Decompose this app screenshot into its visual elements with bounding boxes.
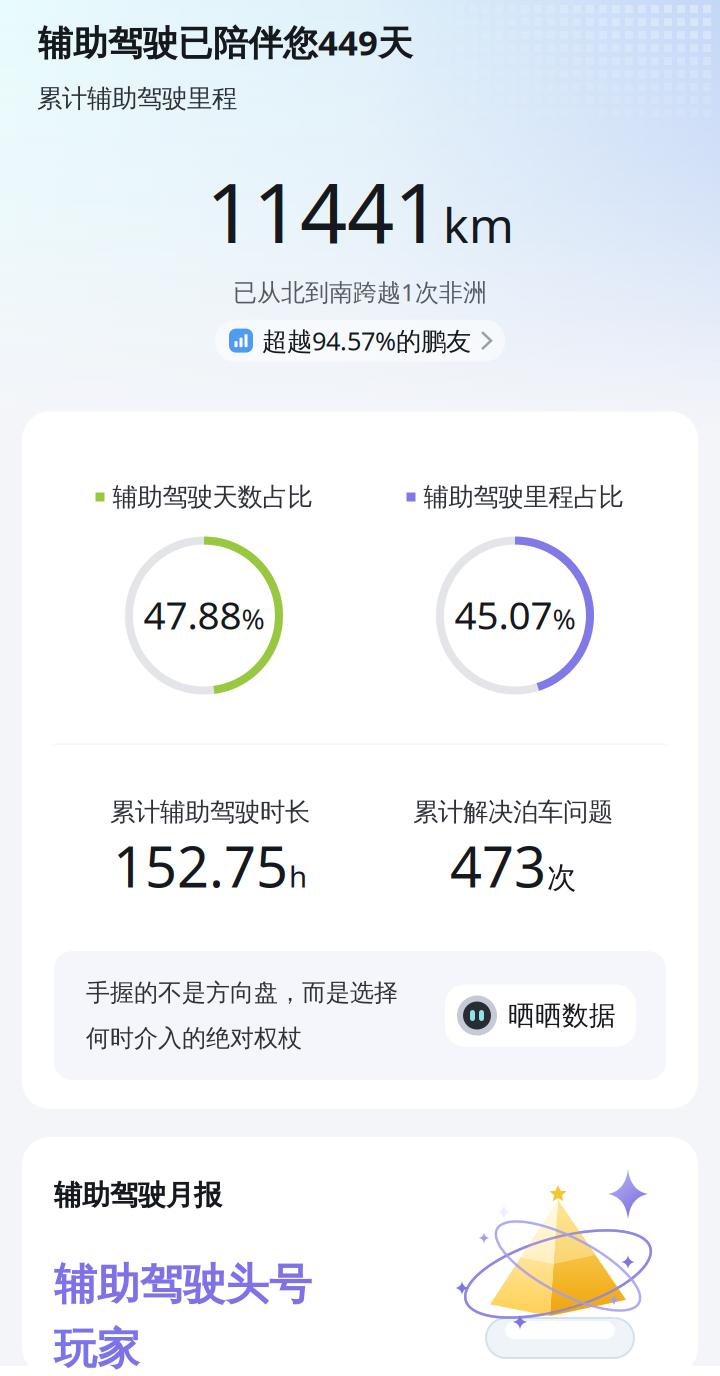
staticText: 手握的不是方向盘，而是选择 — [86, 978, 398, 1007]
staticText: 473 — [450, 829, 546, 903]
staticText: % — [552, 600, 575, 637]
staticText: 累计辅助驾驶里程 — [37, 83, 237, 114]
button[interactable]: 晒晒数据 — [445, 984, 636, 1046]
staticText: km — [443, 193, 514, 256]
staticText: 152.75 — [113, 829, 288, 903]
staticText: 累计辅助驾驶时长 — [110, 797, 310, 828]
staticText: 何时介入的绝对权杖 — [86, 1023, 302, 1053]
staticText: 辅助驾驶头号 — [54, 1258, 312, 1311]
staticText: 玩家 — [54, 1323, 140, 1375]
staticText: 辅助驾驶天数占比 — [112, 481, 312, 512]
staticText: 45.07 — [454, 589, 552, 640]
button[interactable]: 超越94.57%的鹏友 — [215, 320, 505, 361]
staticText: 辅助驾驶月报 — [54, 1178, 222, 1212]
staticText: 辅助驾驶里程占比 — [423, 481, 623, 512]
staticText: % — [241, 600, 264, 637]
staticText: h — [289, 857, 307, 896]
staticText: 47.88 — [143, 589, 241, 640]
staticText: 已从北到南跨越1次非洲 — [233, 276, 487, 308]
staticText: 11441 — [206, 156, 441, 266]
staticText: 超越94.57%的鹏友 — [262, 324, 471, 357]
staticText: 辅助驾驶已陪伴您449天 — [38, 19, 413, 65]
staticText: 次 — [547, 860, 576, 896]
staticText: 晒晒数据 — [508, 999, 616, 1032]
staticText: 累计解决泊车问题 — [413, 797, 613, 828]
